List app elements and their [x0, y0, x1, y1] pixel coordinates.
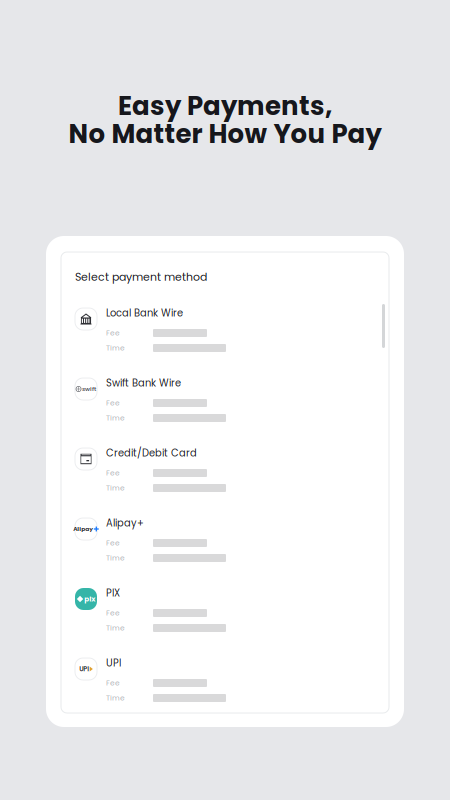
- staticText: Fee: [106, 398, 120, 408]
- staticText: Easy Payments,: [118, 88, 332, 124]
- staticText: Time: [106, 553, 125, 563]
- button[interactable]: UPI: [75, 658, 375, 710]
- staticText: PIX: [106, 586, 120, 600]
- button[interactable]: pix: [75, 588, 375, 640]
- staticText: Alipay: [73, 525, 93, 533]
- staticText: Fee: [106, 608, 120, 618]
- button[interactable]: Alipay: [75, 518, 375, 570]
- button[interactable]: Local Bank Wire: [75, 308, 375, 360]
- staticText: No Matter How You Pay: [68, 116, 381, 152]
- staticText: Swift Bank Wire: [106, 376, 181, 390]
- staticText: Local Bank Wire: [106, 306, 183, 320]
- staticText: UPI: [79, 664, 89, 673]
- staticText: Credit/Debit Card: [106, 446, 197, 460]
- staticText: Time: [106, 343, 125, 353]
- staticText: swift: [82, 385, 96, 393]
- staticText: Time: [106, 413, 125, 423]
- staticText: pix: [84, 594, 95, 604]
- staticText: Select payment method: [75, 269, 207, 285]
- button[interactable]: swift: [75, 378, 375, 430]
- staticText: Fee: [106, 468, 120, 478]
- staticText: UPI: [106, 656, 121, 670]
- staticText: Fee: [106, 678, 120, 688]
- staticText: Time: [106, 483, 125, 493]
- button[interactable]: Credit/Debit Card: [75, 448, 375, 500]
- staticText: Time: [106, 623, 125, 633]
- staticText: Fee: [106, 538, 120, 548]
- staticText: Alipay+: [106, 516, 144, 530]
- staticText: Time: [106, 693, 125, 703]
- staticText: Fee: [106, 328, 120, 338]
